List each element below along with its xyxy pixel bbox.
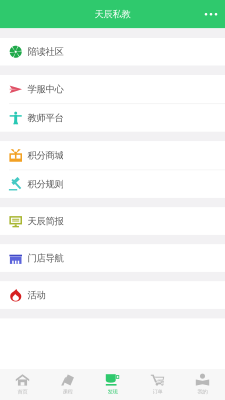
staticText: 课程 xyxy=(62,388,72,395)
staticText: 教师平台 xyxy=(27,112,63,124)
button[interactable]: 积分商城 xyxy=(0,141,225,170)
staticText: 订单 xyxy=(152,388,162,395)
button[interactable]: 门店导航 xyxy=(0,244,225,272)
staticText: 我的 xyxy=(197,388,207,395)
button[interactable]: 活动 xyxy=(0,281,225,309)
button[interactable]: 陪读社区 xyxy=(0,38,225,65)
staticText: 积分商城 xyxy=(27,150,63,161)
staticText: 门店导航 xyxy=(27,252,63,264)
staticText: 天辰私教 xyxy=(94,8,130,20)
button[interactable]: 教师平台 xyxy=(0,104,225,132)
staticText: 积分规则 xyxy=(27,178,63,190)
button[interactable]: 我的 xyxy=(180,369,225,400)
staticText: 活动 xyxy=(27,289,45,301)
staticText: 首页 xyxy=(17,388,27,395)
button[interactable]: 天辰简报 xyxy=(0,207,225,235)
staticText: 陪读社区 xyxy=(27,46,63,57)
button[interactable]: 课程 xyxy=(45,369,90,400)
staticText: 发现 xyxy=(107,388,117,395)
staticText: 天辰简报 xyxy=(27,215,63,227)
button[interactable]: More options xyxy=(197,0,225,28)
button[interactable]: 订单 xyxy=(135,369,180,400)
staticText: 学服中心 xyxy=(27,83,63,95)
button[interactable]: 积分规则 xyxy=(0,170,225,198)
button[interactable]: 首页 xyxy=(0,369,45,400)
button[interactable]: 学服中心 xyxy=(0,75,225,104)
button[interactable]: 发现 xyxy=(90,369,135,400)
